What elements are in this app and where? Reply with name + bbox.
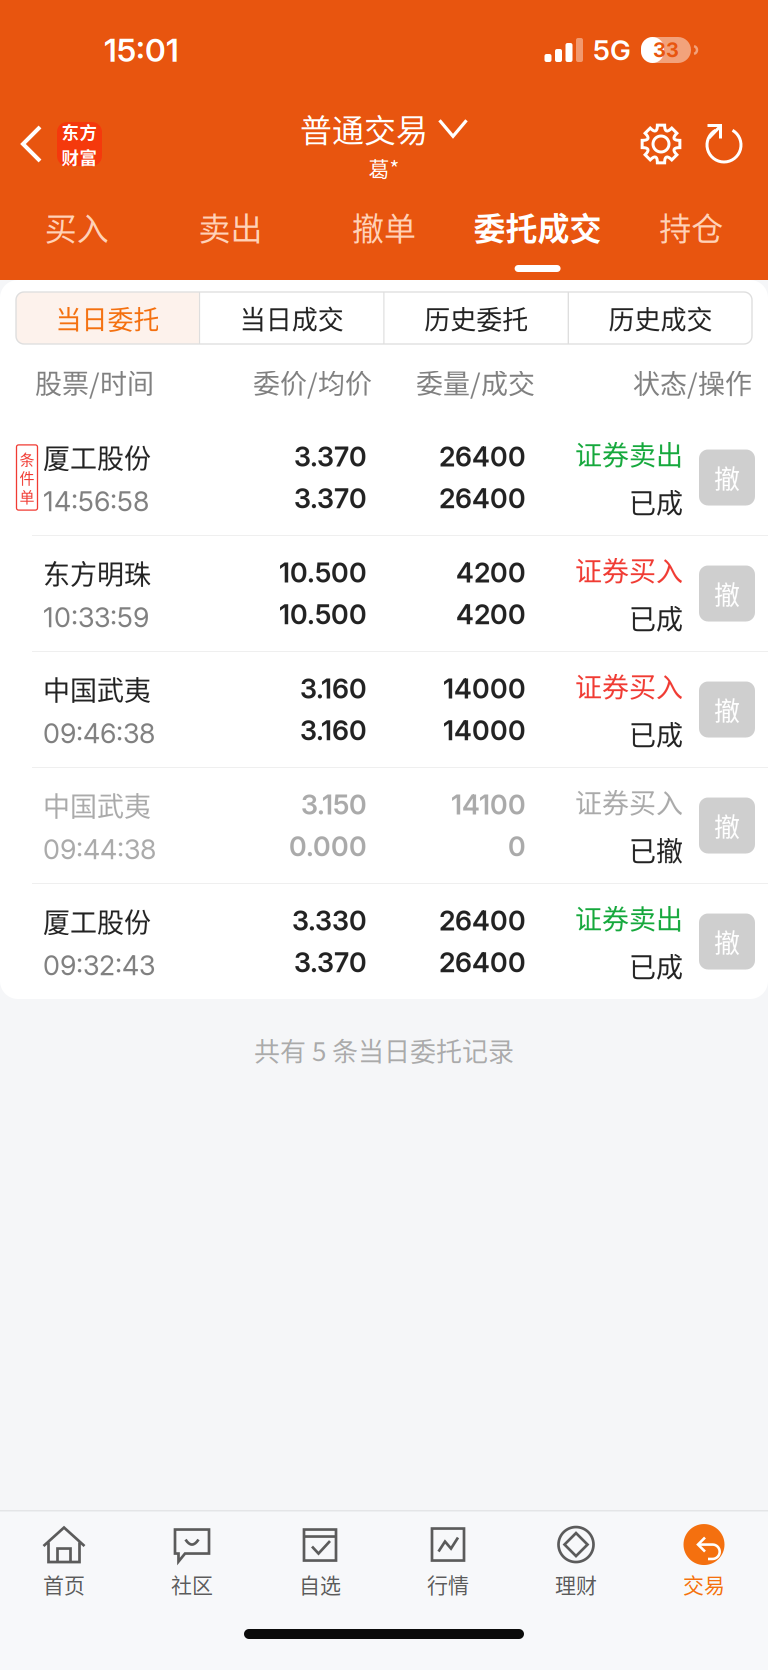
button[interactable]: 撤单	[307, 188, 461, 280]
staticText: 厦工股份	[43, 437, 151, 476]
staticText: 委托成交	[474, 203, 602, 250]
button[interactable]: 买入	[0, 188, 154, 280]
staticText: 首页	[43, 1568, 85, 1599]
button[interactable]: 撤	[699, 565, 755, 621]
staticText: 股票/时间	[35, 362, 154, 402]
staticText: 26400	[439, 482, 526, 515]
staticText: 5G	[593, 33, 631, 67]
button[interactable]: 当日成交	[200, 292, 383, 344]
staticText: 当日委托	[55, 299, 159, 337]
staticText: 15:01	[104, 31, 179, 69]
button[interactable]: 设置	[640, 123, 682, 165]
button[interactable]: 东方	[0, 122, 102, 166]
staticText: 10:33:59	[43, 601, 149, 634]
staticText: 证券卖出	[575, 898, 683, 937]
staticText: 当日成交	[240, 299, 344, 337]
button[interactable]: 自选	[256, 1525, 384, 1599]
staticText: 历史成交	[608, 299, 712, 337]
staticText: 条	[19, 448, 34, 470]
staticText: 撤单	[352, 203, 416, 250]
staticText: 葛*	[368, 152, 399, 183]
button[interactable]: 委托成交	[461, 188, 614, 280]
staticText: 东方	[61, 119, 97, 144]
staticText: 共有 5 条当日委托记录	[254, 1031, 514, 1069]
staticText: 10.500	[279, 598, 367, 631]
staticText: 已成	[629, 714, 683, 753]
staticText: 证券买入	[575, 550, 683, 589]
button[interactable]: 普通交易	[300, 105, 468, 183]
staticText: 已撤	[629, 830, 683, 869]
button[interactable]: 历史委托	[385, 292, 568, 344]
staticText: 社区	[171, 1568, 213, 1599]
staticText: 单	[19, 485, 34, 507]
staticText: 3.150	[301, 788, 367, 821]
staticText: 4200	[456, 598, 526, 631]
staticText: 撤	[714, 575, 740, 612]
button[interactable]: 卖出	[154, 188, 307, 280]
staticText: 行情	[427, 1568, 469, 1599]
button[interactable]: 理财	[512, 1525, 640, 1599]
button[interactable]: 刷新	[704, 121, 744, 167]
button[interactable]: 历史成交	[569, 292, 752, 344]
staticText: 交易	[683, 1568, 725, 1599]
staticText: 历史委托	[424, 299, 528, 337]
staticText: 3.370	[294, 946, 367, 979]
staticText: 撤	[714, 459, 740, 496]
staticText: 0	[508, 830, 526, 863]
button[interactable]: 当日委托	[16, 292, 199, 344]
button[interactable]: 撤	[699, 449, 755, 505]
staticText: 普通交易	[300, 105, 428, 151]
staticText: 理财	[555, 1568, 597, 1599]
button[interactable]: 撤	[699, 681, 755, 737]
staticText: 3.370	[294, 482, 367, 515]
staticText: 14000	[443, 714, 526, 747]
staticText: 财富	[61, 144, 97, 169]
staticText: 已成	[629, 946, 683, 985]
staticText: 10.500	[279, 556, 367, 589]
staticText: 撤	[714, 691, 740, 728]
staticText: 4200	[456, 556, 526, 589]
staticText: 中国武夷	[43, 785, 151, 824]
staticText: 3.160	[300, 672, 367, 705]
staticText: 中国武夷	[43, 669, 151, 708]
button[interactable]: 行情	[384, 1525, 512, 1599]
staticText: 26400	[439, 440, 526, 473]
staticText: 14:56:58	[43, 485, 149, 518]
staticText: 3.370	[294, 440, 367, 473]
staticText: 委价/均价	[253, 362, 372, 402]
staticText: 厦工股份	[43, 901, 151, 940]
staticText: 撤	[714, 807, 740, 844]
button[interactable]: 撤	[699, 797, 755, 853]
staticText: 14100	[451, 788, 526, 821]
staticText: 已成	[629, 482, 683, 521]
button[interactable]: 社区	[128, 1525, 256, 1599]
staticText: 自选	[299, 1568, 341, 1599]
staticText: 33	[653, 38, 679, 62]
staticText: 委量/成交	[416, 362, 535, 402]
staticText: 09:46:38	[43, 717, 155, 750]
staticText: 证券买入	[575, 782, 683, 821]
staticText: 3.330	[292, 904, 367, 937]
button[interactable]: 撤	[699, 913, 755, 969]
staticText: 证券买入	[575, 666, 683, 705]
staticText: 证券卖出	[575, 434, 683, 473]
staticText: 09:32:43	[43, 949, 155, 982]
button[interactable]: 交易	[640, 1525, 768, 1599]
staticText: 件	[19, 467, 34, 488]
button[interactable]: 持仓	[614, 188, 768, 280]
staticText: 买入	[45, 203, 109, 250]
staticText: 26400	[439, 904, 526, 937]
staticText: 卖出	[198, 203, 262, 250]
staticText: 已成	[629, 598, 683, 637]
staticText: 26400	[439, 946, 526, 979]
staticText: 撤	[714, 923, 740, 960]
staticText: 状态/操作	[633, 362, 752, 402]
staticText: 09:44:38	[43, 833, 156, 866]
button[interactable]: 首页	[0, 1525, 128, 1599]
staticText: 东方明珠	[43, 553, 151, 592]
staticText: 3.160	[300, 714, 367, 747]
staticText: 持仓	[659, 203, 723, 250]
staticText: 14000	[443, 672, 526, 705]
staticText: 0.000	[289, 830, 367, 863]
